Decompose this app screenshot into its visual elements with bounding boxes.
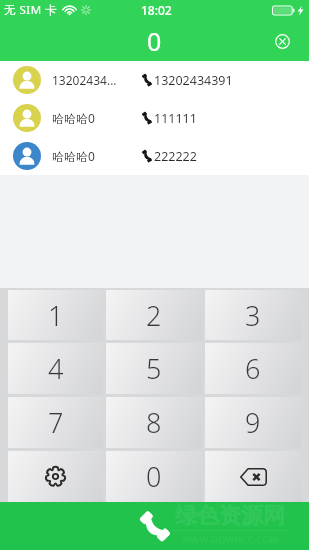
staticText: 222222	[154, 148, 197, 165]
staticText: 3	[245, 297, 261, 334]
button[interactable]: 0	[106, 451, 202, 502]
button[interactable]: 6	[205, 343, 301, 394]
button[interactable]: Settings	[8, 451, 103, 502]
button[interactable]: Clear	[269, 28, 295, 54]
button[interactable]: Delete	[205, 451, 301, 502]
button[interactable]: 7	[8, 397, 103, 448]
staticText: 无 SIM 卡	[4, 2, 58, 18]
staticText: 2	[146, 297, 162, 334]
staticText: 18:02	[141, 2, 172, 18]
staticText: 13202434...	[52, 72, 117, 88]
staticText: 4	[48, 350, 64, 387]
staticText: 绿色资源网	[175, 502, 285, 530]
staticText: 13202434391	[154, 72, 233, 89]
button[interactable]: 1	[8, 290, 103, 340]
staticText: 哈哈哈0	[52, 148, 95, 164]
button[interactable]: 8	[106, 397, 202, 448]
staticText: WWW.DOWNCC.COM	[182, 533, 279, 545]
staticText: 0	[146, 458, 162, 495]
button[interactable]: 哈哈哈0	[0, 137, 309, 175]
button[interactable]: 5	[106, 343, 202, 394]
button[interactable]: 4	[8, 343, 103, 394]
staticText: 6	[245, 350, 261, 387]
button[interactable]: Call	[0, 502, 309, 550]
button[interactable]: 3	[205, 290, 301, 340]
button[interactable]: 2	[106, 290, 202, 340]
staticText: 5	[146, 350, 162, 387]
staticText: 8	[146, 404, 162, 441]
staticText: 1	[48, 297, 64, 334]
staticText: 哈哈哈0	[52, 110, 95, 126]
staticText: 111111	[154, 110, 197, 127]
staticText: 9	[245, 404, 261, 441]
button[interactable]: 9	[205, 397, 301, 448]
staticText: 7	[48, 404, 64, 441]
staticText: 0	[147, 24, 162, 58]
button[interactable]: 13202434...	[0, 61, 309, 99]
button[interactable]: 哈哈哈0	[0, 99, 309, 137]
